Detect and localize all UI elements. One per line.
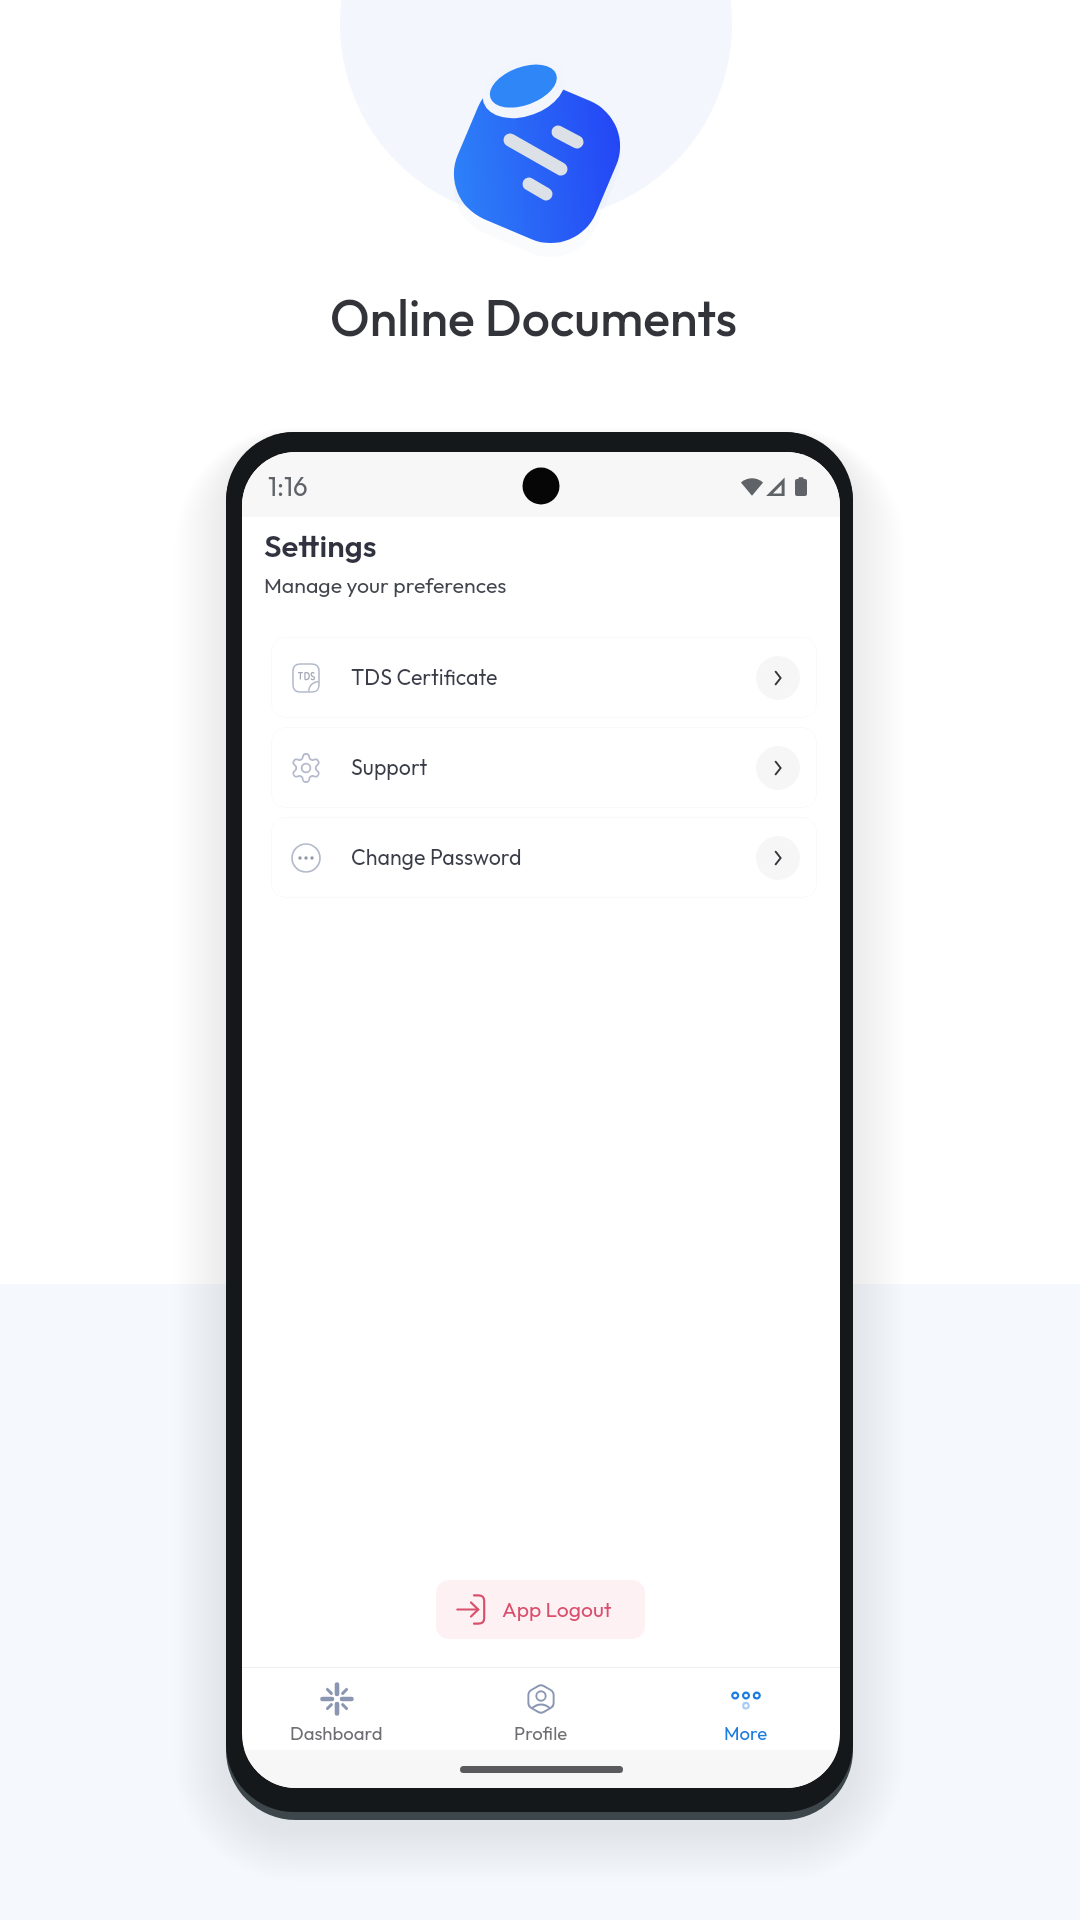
other: Change Password (756, 836, 800, 880)
button[interactable]: Dashboard (276, 1672, 396, 1752)
button[interactable]: Profile (481, 1672, 601, 1752)
staticText: Dashboard (290, 1721, 383, 1744)
staticText: TDS Certificate (351, 664, 498, 691)
staticText: Online Documents (330, 286, 738, 349)
staticText: 1:16 (268, 470, 308, 503)
staticText: Manage your preferences (264, 572, 507, 599)
button[interactable]: Change Password (271, 817, 817, 898)
staticText: More (724, 1721, 768, 1744)
staticText: App Logout (502, 1596, 612, 1623)
button[interactable]: TDS Certificate (271, 637, 817, 718)
staticText: Settings (264, 526, 377, 565)
staticText: Support (351, 754, 428, 781)
other: Support (756, 746, 800, 790)
button[interactable]: Support (271, 727, 817, 808)
staticText: Profile (514, 1721, 568, 1744)
button[interactable]: More (686, 1672, 806, 1752)
other: TDS Certificate (756, 656, 800, 700)
button[interactable]: App Logout (436, 1580, 645, 1639)
staticText: Change Password (351, 844, 522, 871)
